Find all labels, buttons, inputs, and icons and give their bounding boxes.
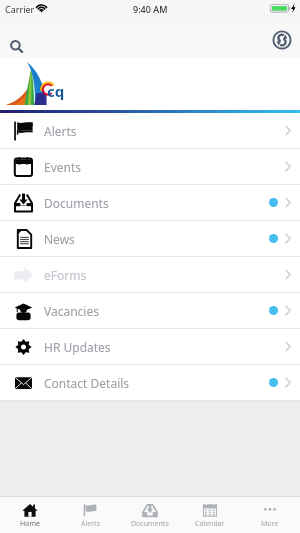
staticText: More <box>261 519 279 529</box>
staticText: Documents <box>131 519 169 529</box>
staticText: Alerts <box>81 519 100 529</box>
button[interactable]: Documents <box>120 497 180 533</box>
button[interactable]: Events <box>0 149 300 184</box>
button[interactable]: Contact Details <box>0 365 300 400</box>
button[interactable]: Alerts <box>60 497 120 533</box>
staticText: News <box>44 231 75 247</box>
button[interactable]: News <box>0 221 300 256</box>
button[interactable]: Search <box>2 26 30 54</box>
button[interactable]: Documents <box>0 185 300 220</box>
button[interactable]: Vacancies <box>0 293 300 328</box>
staticText: eForms <box>44 267 87 283</box>
staticText: Vacancies <box>44 303 99 319</box>
staticText: Calendar <box>195 519 225 529</box>
staticText: HR Updates <box>44 339 111 355</box>
button[interactable]: Alerts <box>0 113 300 148</box>
button[interactable]: More <box>240 497 300 533</box>
button[interactable]: Calendar <box>180 497 240 533</box>
staticText: Documents <box>44 195 109 211</box>
staticText: Alerts <box>44 123 77 139</box>
staticText: Home <box>20 519 40 529</box>
staticText: Contact Details <box>44 375 130 391</box>
staticText: cq <box>47 81 65 101</box>
staticText: Carrier <box>5 3 35 15</box>
staticText: 9:40 AM <box>133 3 168 15</box>
staticText: Events <box>44 159 82 175</box>
button[interactable]: Home <box>0 497 60 533</box>
button[interactable]: HR Updates <box>0 329 300 364</box>
button[interactable]: Refresh <box>270 28 294 52</box>
button[interactable]: eForms <box>0 257 300 292</box>
